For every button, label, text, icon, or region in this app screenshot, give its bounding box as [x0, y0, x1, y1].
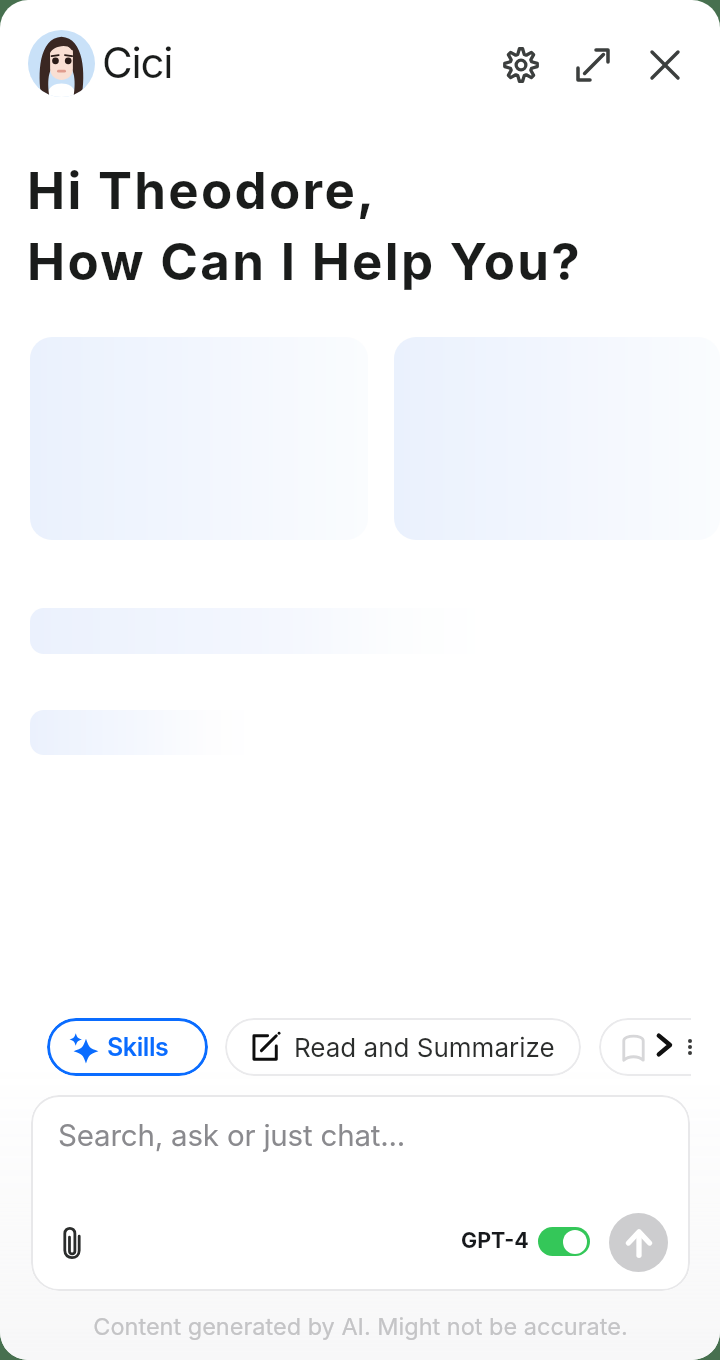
- button[interactable]: Attach file: [46, 1217, 98, 1269]
- button[interactable]: Settings: [495, 39, 547, 91]
- button[interactable]: More skills: [637, 1018, 691, 1072]
- staticText: Content generated by AI. Might not be ac…: [93, 1312, 628, 1340]
- staticText: Read and Summarize: [294, 1032, 555, 1063]
- button[interactable]: Saved: [599, 1018, 720, 1076]
- button[interactable]: Send: [609, 1213, 668, 1272]
- staticText: Search, ask or just chat...: [58, 1117, 406, 1153]
- staticText: Cici: [102, 37, 173, 88]
- button[interactable]: Search, ask or just chat...: [31, 1095, 690, 1291]
- staticText: Hi Theodore,: [27, 160, 377, 222]
- button[interactable]: Read and Summarize: [225, 1018, 581, 1076]
- button[interactable]: Close: [639, 39, 691, 91]
- staticText: How Can I Help You?: [27, 231, 583, 293]
- button[interactable]: Toggle GPT-4: [538, 1227, 590, 1256]
- staticText: GPT-4: [461, 1227, 529, 1253]
- button[interactable]: Profile: [28, 30, 95, 97]
- button[interactable]: Skills: [47, 1018, 208, 1076]
- button[interactable]: More options: [676, 1020, 704, 1074]
- button[interactable]: Expand: [567, 39, 619, 91]
- staticText: Skills: [107, 1032, 169, 1062]
